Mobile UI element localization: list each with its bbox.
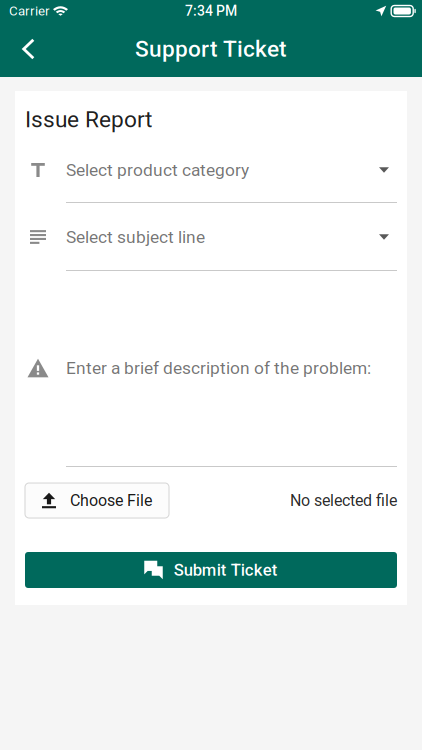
button[interactable]: Submit Ticket bbox=[25, 552, 397, 588]
button[interactable]: Select product category bbox=[25, 160, 397, 203]
button[interactable]: Choose File bbox=[25, 483, 169, 518]
staticText: 7:34 PM bbox=[185, 3, 237, 19]
staticText: Select subject line bbox=[66, 227, 205, 247]
staticText: Support Ticket bbox=[135, 36, 287, 62]
staticText: Carrier bbox=[9, 3, 50, 19]
staticText: Issue Report bbox=[25, 106, 152, 133]
staticText: No selected file bbox=[290, 491, 397, 510]
staticText: Select product category bbox=[66, 160, 249, 180]
staticText: Choose File bbox=[70, 491, 152, 510]
button[interactable]: Select subject line bbox=[25, 227, 397, 271]
staticText: Enter a brief description of the problem… bbox=[66, 358, 371, 378]
staticText: Submit Ticket bbox=[174, 560, 278, 580]
button[interactable]: Back bbox=[0, 21, 57, 76]
